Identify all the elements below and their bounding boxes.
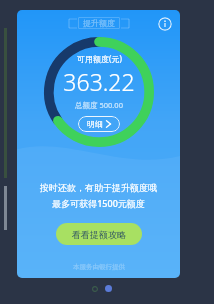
button[interactable]: Information — [158, 17, 172, 31]
staticText: 363.22 — [63, 66, 135, 97]
staticText: 提升额度 — [83, 18, 115, 28]
staticText: 看看提额攻略 — [72, 229, 126, 240]
staticText: 按时还款，有助于提升额度哦 — [40, 182, 157, 193]
staticText: 明细 — [87, 119, 103, 129]
staticText: 最多可获得1500元额度 — [52, 197, 145, 209]
staticText: 本服务由银行提供 — [73, 263, 125, 271]
staticText: 总额度 500.00 — [75, 100, 123, 110]
button[interactable]: 看看提额攻略 — [56, 223, 142, 245]
button[interactable]: 明细 — [78, 116, 120, 132]
staticText: 可用额度(元) — [77, 53, 122, 64]
